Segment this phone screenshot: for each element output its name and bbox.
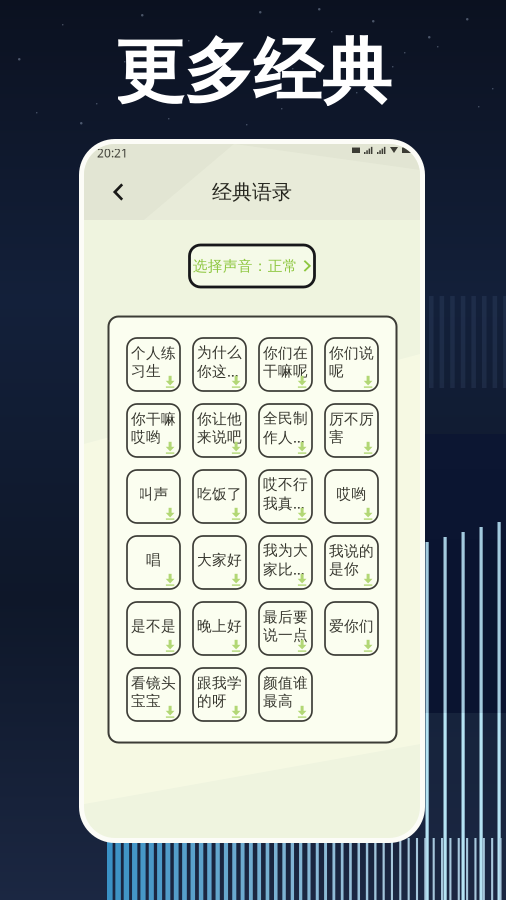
staticText: 看镜头 宝宝 [131,674,176,710]
staticText: 颜值谁 最高 [263,674,308,710]
staticText: 哎不行 我真… [263,475,308,513]
staticText: 个人练 习生 [131,344,176,380]
button[interactable]: 你干嘛 哎哟 [127,404,180,457]
button[interactable]: 哎不行 我真… [259,470,312,523]
staticText: 你让他 来说吧 [197,410,242,446]
button[interactable]: 我为大 家比… [259,536,312,589]
staticText: 厉不厉 害 [329,410,374,446]
staticText: 跟我学 的呀 [197,674,242,710]
staticText: 选择声音：正常 [193,257,298,275]
staticText: 20:21 [97,145,128,161]
button[interactable]: 最后要 说一点 [259,602,312,655]
button[interactable]: 跟我学 的呀 [193,668,246,721]
button[interactable]: 哎哟 [325,470,378,523]
staticText: 我为大 家比… [263,541,308,579]
staticText: 你干嘛 哎哟 [131,410,176,446]
button[interactable]: Back [101,175,135,209]
button[interactable]: 你们说 呢 [325,338,378,391]
button[interactable]: 看镜头 宝宝 [127,668,180,721]
button[interactable]: 吃饭了 [193,470,246,523]
button[interactable]: 你让他 来说吧 [193,404,246,457]
staticText: 晚上好 [197,617,242,635]
button[interactable]: 是不是 [127,602,180,655]
button[interactable]: 大家好 [193,536,246,589]
staticText: 更多经典 [115,29,391,115]
staticText: 你们在 干嘛呢 [263,344,308,380]
staticText: 经典语录 [212,180,292,204]
button[interactable]: 爱你们 [325,602,378,655]
staticText: 为什么 你这… [197,343,242,381]
button[interactable]: 为什么 你这… [193,338,246,391]
staticText: 爱你们 [329,617,374,635]
staticText: 全民制 作人… [263,409,308,447]
button[interactable]: 我说的 是你 [325,536,378,589]
staticText: 唱 [146,551,161,569]
button[interactable]: 选择声音：正常 [189,245,314,287]
button[interactable]: 颜值谁 最高 [259,668,312,721]
button[interactable]: 个人练 习生 [127,338,180,391]
button[interactable]: 唱 [127,536,180,589]
button[interactable]: 全民制 作人… [259,404,312,457]
button[interactable]: 晚上好 [193,602,246,655]
staticText: 最后要 说一点 [263,608,308,644]
button[interactable]: 叫声 [127,470,180,523]
button[interactable]: 厉不厉 害 [325,404,378,457]
staticText: 你们说 呢 [329,344,374,380]
staticText: 叫声 [138,485,168,503]
staticText: 哎哟 [336,485,366,503]
staticText: 大家好 [197,551,242,569]
staticText: 我说的 是你 [329,542,374,578]
staticText: 是不是 [131,617,176,635]
button[interactable]: 你们在 干嘛呢 [259,338,312,391]
staticText: 吃饭了 [197,485,242,503]
